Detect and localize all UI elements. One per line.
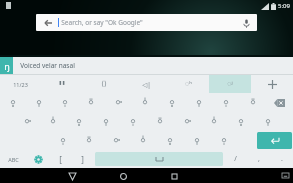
button[interactable] bbox=[0, 93, 26, 112]
button[interactable]: ] bbox=[71, 150, 94, 168]
button[interactable] bbox=[119, 112, 146, 131]
button[interactable] bbox=[66, 112, 92, 131]
button[interactable]: ŋ bbox=[0, 57, 13, 74]
button[interactable]: ABC bbox=[0, 150, 27, 168]
button[interactable] bbox=[251, 75, 293, 93]
button[interactable] bbox=[212, 93, 239, 112]
button[interactable] bbox=[41, 75, 83, 93]
button[interactable]: Enter bbox=[257, 132, 292, 149]
button[interactable] bbox=[26, 93, 52, 112]
staticText: ABC bbox=[8, 156, 19, 163]
staticText: , bbox=[258, 154, 260, 164]
button[interactable]: Space bbox=[95, 152, 223, 166]
staticText: . bbox=[281, 154, 283, 164]
button[interactable] bbox=[146, 112, 173, 131]
button[interactable] bbox=[92, 112, 119, 131]
button[interactable] bbox=[210, 131, 237, 150]
button[interactable] bbox=[227, 112, 254, 131]
button[interactable] bbox=[76, 131, 102, 150]
other: Backspace bbox=[274, 99, 285, 107]
button[interactable]: ⟨⟩ bbox=[83, 75, 125, 93]
button[interactable] bbox=[173, 112, 200, 131]
staticText: ◁| bbox=[142, 80, 151, 89]
button[interactable] bbox=[156, 131, 183, 150]
button[interactable]: Back bbox=[36, 14, 257, 31]
button[interactable]: Back bbox=[65, 169, 79, 183]
button[interactable]: Home bbox=[116, 169, 130, 183]
button[interactable] bbox=[131, 93, 158, 112]
button[interactable] bbox=[158, 93, 185, 112]
staticText: 11/23 bbox=[13, 81, 28, 88]
button[interactable] bbox=[50, 131, 76, 150]
staticText: ] bbox=[81, 154, 84, 165]
button[interactable] bbox=[14, 112, 40, 131]
staticText: Voiced velar nasal bbox=[20, 61, 75, 70]
button[interactable] bbox=[185, 93, 212, 112]
button[interactable]: Backspace bbox=[266, 93, 293, 112]
button[interactable]: Back bbox=[41, 16, 54, 29]
staticText: ◌ʰ bbox=[185, 79, 192, 89]
button[interactable]: ◁| bbox=[125, 75, 167, 93]
staticText: ⟨⟩ bbox=[101, 80, 107, 88]
staticText: ◌ʲ bbox=[227, 79, 233, 89]
button[interactable]: / bbox=[224, 150, 247, 168]
button[interactable] bbox=[104, 93, 131, 112]
button[interactable] bbox=[183, 131, 210, 150]
button[interactable] bbox=[239, 93, 266, 112]
staticText: / bbox=[234, 154, 237, 164]
button[interactable]: [ bbox=[49, 150, 71, 168]
staticText: ŋ bbox=[4, 60, 10, 72]
button[interactable] bbox=[254, 112, 281, 131]
button[interactable] bbox=[52, 93, 78, 112]
staticText: 5:09 bbox=[278, 2, 290, 10]
button[interactable]: Change keyboard bbox=[281, 171, 290, 180]
button[interactable]: Settings bbox=[27, 150, 49, 168]
button[interactable] bbox=[78, 93, 104, 112]
button[interactable] bbox=[40, 112, 66, 131]
button[interactable] bbox=[129, 131, 156, 150]
button[interactable]: 11/23 bbox=[0, 75, 41, 93]
staticText: Search, or say "Ok Google" bbox=[61, 18, 143, 27]
button[interactable] bbox=[102, 131, 129, 150]
button[interactable]: , bbox=[247, 150, 270, 168]
staticText: [ bbox=[59, 154, 62, 165]
button[interactable]: Recents bbox=[167, 169, 181, 183]
button[interactable] bbox=[200, 112, 227, 131]
button[interactable]: Voice search bbox=[240, 17, 252, 29]
button[interactable]: ◌ʰ bbox=[167, 75, 209, 93]
